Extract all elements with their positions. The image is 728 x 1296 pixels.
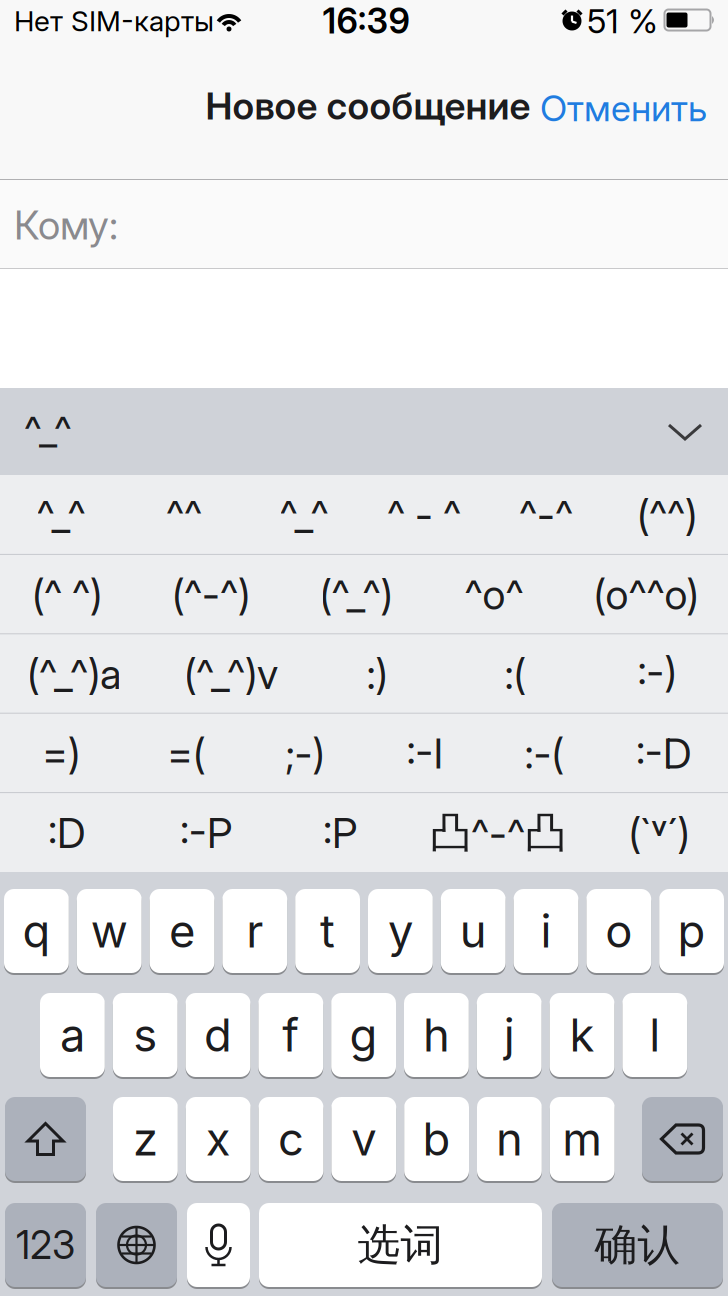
staticText: :-(: [524, 729, 563, 778]
button[interactable]: (^_^)a: [27, 650, 121, 698]
button[interactable]: Shift: [5, 1096, 86, 1182]
staticText: (^^): [637, 491, 697, 539]
staticText: f: [282, 1008, 299, 1062]
button[interactable]: =(: [167, 729, 205, 778]
button[interactable]: a: [40, 992, 105, 1078]
button[interactable]: (`˅´): [628, 809, 689, 857]
button[interactable]: :-(: [524, 729, 563, 778]
staticText: =(: [167, 729, 205, 778]
button[interactable]: y: [368, 888, 433, 974]
button[interactable]: ^_^: [279, 491, 328, 539]
button[interactable]: 123: [5, 1202, 86, 1288]
button[interactable]: c: [259, 1096, 323, 1182]
staticText: ^_^: [279, 491, 328, 539]
staticText: Отменить: [540, 87, 707, 129]
button[interactable]: :): [366, 650, 387, 698]
staticText: ^_^: [36, 491, 85, 539]
staticText: (`˅´): [628, 809, 689, 857]
button[interactable]: q: [4, 888, 69, 974]
button[interactable]: e: [150, 888, 214, 974]
button[interactable]: Удалить: [642, 1096, 723, 1182]
button[interactable]: 选词: [259, 1202, 542, 1288]
staticText: 选词: [357, 1219, 443, 1271]
staticText: r: [246, 904, 263, 958]
staticText: :): [366, 650, 387, 698]
staticText: ^_^: [24, 406, 72, 454]
button[interactable]: n: [477, 1096, 542, 1182]
button[interactable]: Отменить: [540, 87, 707, 129]
button[interactable]: (^ ^): [32, 570, 102, 619]
button[interactable]: x: [186, 1096, 251, 1182]
staticText: ^^: [166, 491, 202, 539]
button[interactable]: ^o^: [464, 570, 523, 619]
button[interactable]: :-D: [636, 729, 692, 778]
staticText: p: [678, 904, 706, 958]
staticText: m: [562, 1112, 602, 1166]
button[interactable]: Сменить клавиатуру: [96, 1202, 177, 1288]
button[interactable]: j: [477, 992, 542, 1078]
button[interactable]: :(: [504, 650, 525, 698]
button[interactable]: r: [222, 888, 287, 974]
button[interactable]: (^-^): [172, 570, 250, 619]
button[interactable]: b: [404, 1096, 469, 1182]
button[interactable]: Диктовка: [187, 1202, 250, 1288]
button[interactable]: ^^: [166, 491, 202, 539]
button[interactable]: 凸^-^凸: [430, 808, 566, 858]
staticText: b: [423, 1112, 451, 1166]
button[interactable]: :-P: [180, 809, 232, 857]
button[interactable]: ^_^: [36, 491, 85, 539]
button[interactable]: i: [514, 888, 578, 974]
button[interactable]: g: [331, 992, 396, 1078]
staticText: n: [496, 1112, 523, 1166]
staticText: ^o^: [464, 570, 523, 619]
staticText: :-): [637, 650, 676, 698]
button[interactable]: w: [77, 888, 142, 974]
button[interactable]: 确认: [552, 1202, 723, 1288]
staticText: a: [60, 1008, 85, 1062]
button[interactable]: k: [550, 992, 614, 1078]
staticText: 51 %: [587, 1, 658, 41]
button[interactable]: z: [113, 1096, 178, 1182]
button[interactable]: s: [113, 992, 178, 1078]
staticText: y: [388, 904, 413, 958]
staticText: ^-^: [519, 491, 573, 539]
button[interactable]: :P: [323, 809, 357, 857]
staticText: z: [133, 1112, 158, 1166]
staticText: (^_^)v: [184, 650, 278, 698]
button[interactable]: (^_^)v: [184, 650, 278, 698]
button[interactable]: ^-^: [519, 491, 573, 539]
staticText: s: [133, 1008, 157, 1062]
staticText: e: [169, 904, 195, 958]
button[interactable]: m: [550, 1096, 615, 1182]
staticText: u: [460, 904, 487, 958]
staticText: :-I: [406, 729, 443, 778]
button[interactable]: p: [659, 888, 724, 974]
button[interactable]: h: [404, 992, 469, 1078]
staticText: l: [649, 1008, 660, 1062]
staticText: (^_^): [319, 570, 392, 619]
button[interactable]: (^_^): [319, 570, 392, 619]
button[interactable]: (^^): [637, 491, 697, 539]
button[interactable]: :D: [48, 809, 86, 857]
staticText: Новое сообщение: [205, 84, 530, 128]
button[interactable]: =): [42, 729, 80, 778]
button[interactable]: ;-): [285, 729, 324, 778]
staticText: ;-): [285, 729, 324, 778]
staticText: :(: [504, 650, 525, 698]
button[interactable]: ^ - ^: [387, 491, 461, 539]
staticText: d: [204, 1008, 232, 1062]
button[interactable]: u: [441, 888, 506, 974]
staticText: j: [504, 1008, 515, 1062]
staticText: :P: [323, 809, 357, 857]
button[interactable]: f: [258, 992, 323, 1078]
button[interactable]: :-): [637, 650, 676, 698]
button[interactable]: d: [186, 992, 250, 1078]
button[interactable]: Свернуть клавиатуру: [667, 423, 703, 441]
button[interactable]: l: [622, 992, 687, 1078]
staticText: Нет SIM-карты: [14, 4, 214, 37]
button[interactable]: :-I: [406, 729, 443, 778]
button[interactable]: v: [331, 1096, 396, 1182]
button[interactable]: (o^^o): [593, 570, 698, 619]
button[interactable]: o: [586, 888, 651, 974]
button[interactable]: t: [295, 888, 360, 974]
